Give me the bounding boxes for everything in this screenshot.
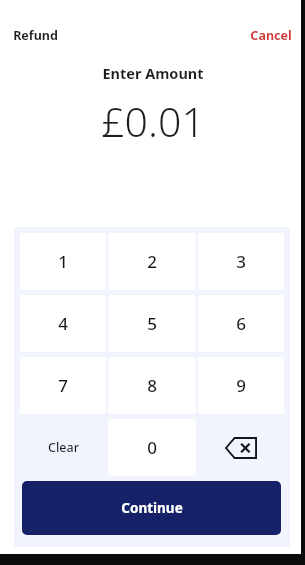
button[interactable]: 3 (198, 233, 284, 290)
staticText: 9 (236, 374, 246, 397)
staticText: Cancel (250, 27, 292, 44)
button[interactable]: Refund (13, 27, 58, 44)
staticText: 7 (58, 374, 68, 397)
staticText: Enter Amount (102, 63, 204, 83)
staticText: 3 (236, 250, 246, 273)
button[interactable]: Backspace (198, 419, 284, 476)
staticText: 6 (236, 312, 246, 335)
staticText: Clear (48, 439, 79, 456)
button[interactable]: Clear (20, 419, 106, 476)
button[interactable]: 5 (108, 295, 196, 352)
button[interactable]: 4 (20, 295, 106, 352)
staticText: 8 (147, 374, 157, 397)
staticText: Refund (13, 27, 58, 44)
staticText: 2 (147, 250, 157, 273)
button[interactable]: 9 (198, 357, 284, 414)
button[interactable]: Continue (22, 481, 281, 535)
button[interactable]: 7 (20, 357, 106, 414)
button[interactable]: 2 (108, 233, 196, 290)
staticText: 1 (58, 250, 68, 273)
button[interactable]: 1 (20, 233, 106, 290)
button[interactable]: 8 (108, 357, 196, 414)
button[interactable]: 0 (108, 419, 196, 476)
staticText: £0.01 (101, 93, 205, 149)
staticText: 0 (147, 436, 157, 459)
staticText: Continue (121, 499, 183, 517)
button[interactable]: 6 (198, 295, 284, 352)
staticText: 4 (58, 312, 68, 335)
staticText: 5 (147, 312, 157, 335)
button[interactable]: Cancel (250, 27, 292, 44)
